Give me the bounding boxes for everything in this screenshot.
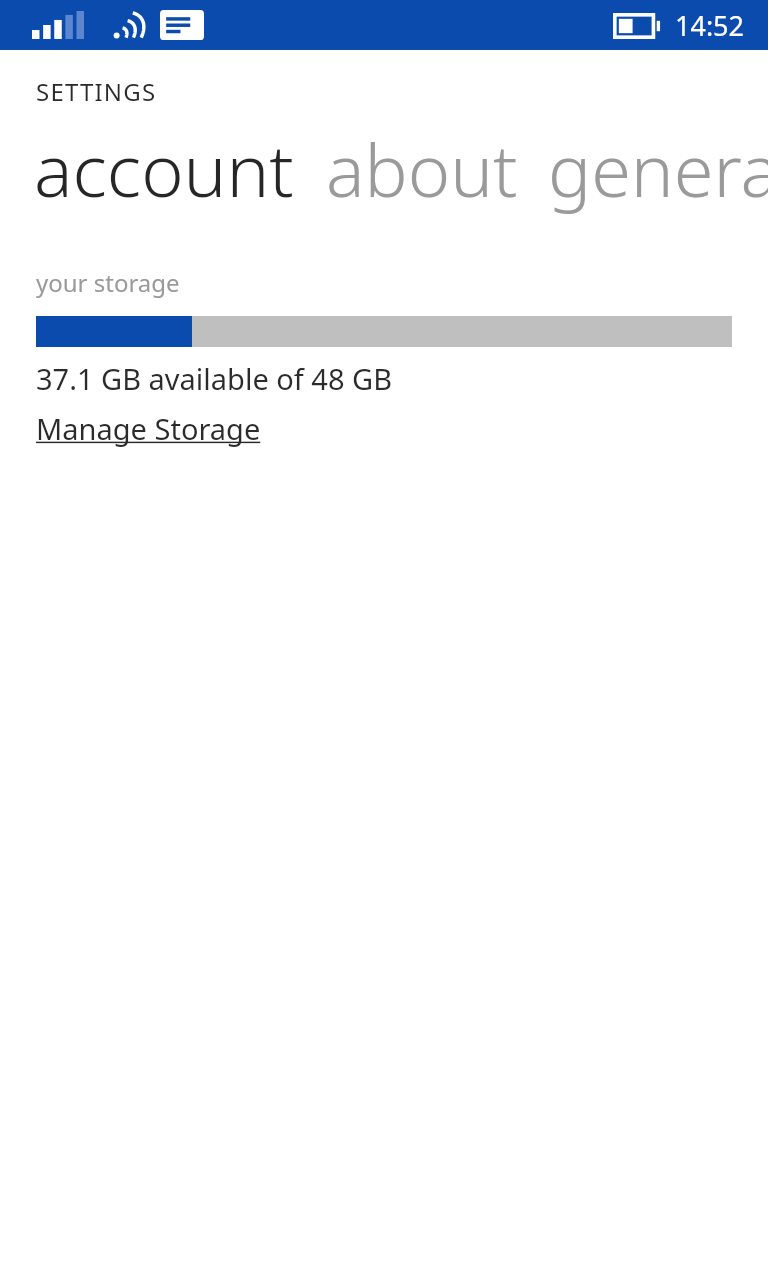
- staticText: general: [548, 120, 768, 218]
- staticText: SETTINGS: [36, 75, 157, 108]
- staticText: your storage: [36, 266, 180, 299]
- button[interactable]: about: [326, 116, 518, 222]
- button[interactable]: general: [548, 116, 768, 222]
- staticText: 37.1 GB available of 48 GB: [36, 359, 393, 398]
- staticText: Manage Storage: [36, 409, 261, 448]
- staticText: about: [326, 120, 518, 218]
- button[interactable]: Manage Storage: [36, 409, 261, 448]
- staticText: account: [34, 120, 294, 218]
- staticText: 14:52: [675, 7, 745, 44]
- button[interactable]: account: [34, 116, 294, 222]
